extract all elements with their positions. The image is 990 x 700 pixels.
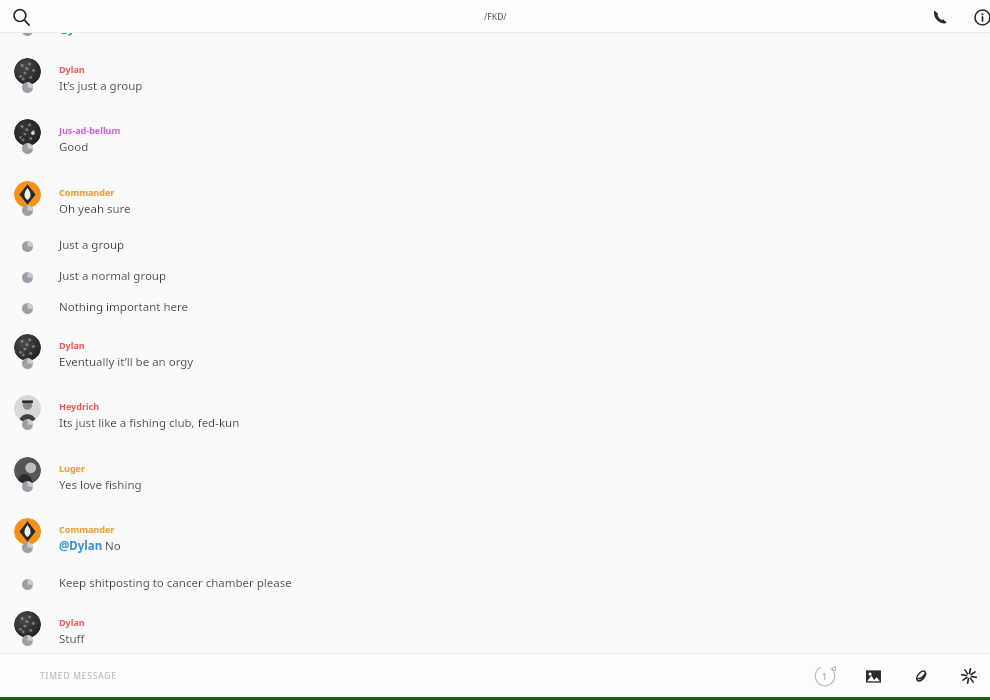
staticText: Just a group: [59, 237, 125, 253]
staticText: Dylan: [59, 63, 85, 75]
staticText: Stuff: [59, 631, 85, 647]
button[interactable]: Just a normal group: [0, 266, 990, 292]
button[interactable]: @Jus-ad-bellum Soon.: [0, 19, 990, 45]
staticText: It’s just a group: [59, 78, 143, 94]
button[interactable]: Call: [924, 1, 956, 33]
staticText: TIMED MESSAGE: [40, 670, 117, 682]
button[interactable]: Dylan: [0, 58, 990, 98]
staticText: Eventually it’ll be an orgy: [59, 354, 194, 370]
staticText: Dylan: [59, 339, 85, 351]
staticText: @Jus-ad-bellum Soon.: [59, 21, 181, 37]
staticText: Just a normal group: [59, 268, 167, 284]
button[interactable]: Keep shitposting to cancer chamber pleas…: [0, 573, 990, 599]
button[interactable]: Jus-ad-bellum: [0, 119, 990, 159]
button[interactable]: Effects: [952, 659, 986, 693]
staticText: Heydrich: [59, 400, 100, 412]
button[interactable]: Nothing important here: [0, 297, 990, 323]
button[interactable]: Commander: [0, 518, 990, 558]
staticText: Commander: [59, 186, 115, 198]
staticText: Oh yeah sure: [59, 201, 131, 217]
staticText: @Dylan No: [59, 538, 121, 554]
staticText: Nothing important here: [59, 299, 189, 315]
button[interactable]: Commander: [0, 181, 990, 221]
staticText: Good: [59, 139, 89, 155]
staticText: Commander: [59, 523, 115, 535]
button[interactable]: Group info: [966, 1, 990, 33]
staticText: Jus-ad-bellum: [59, 124, 121, 136]
button[interactable]: TIMED MESSAGE: [40, 661, 440, 691]
staticText: /FKD/: [484, 11, 507, 23]
staticText: Luger: [59, 462, 85, 474]
staticText: Keep shitposting to cancer chamber pleas…: [59, 575, 292, 591]
button[interactable]: Heydrich: [0, 395, 990, 435]
button[interactable]: Dylan: [0, 611, 990, 651]
staticText: 1: [822, 670, 828, 682]
staticText: Yes love fishing: [59, 477, 142, 493]
button[interactable]: Message timer 1 day: [808, 659, 842, 693]
button[interactable]: Search: [6, 2, 36, 32]
staticText: Its just like a fishing club, fed-kun: [59, 415, 240, 431]
button[interactable]: Luger: [0, 457, 990, 497]
button[interactable]: Just a group: [0, 235, 990, 261]
staticText: d: [832, 664, 837, 674]
staticText: Dylan: [59, 616, 85, 628]
button[interactable]: Dylan: [0, 334, 990, 374]
button[interactable]: Attach file: [904, 659, 938, 693]
button[interactable]: Send image: [856, 659, 890, 693]
